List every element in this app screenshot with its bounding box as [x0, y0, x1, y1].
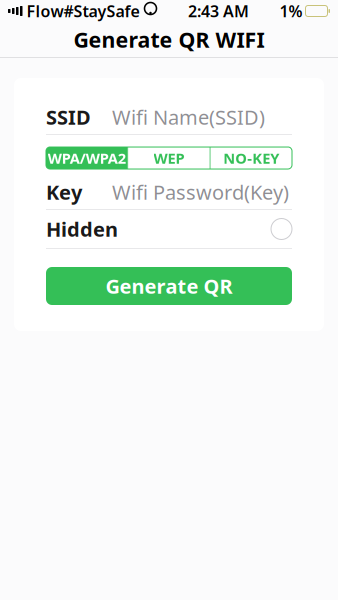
- staticText: NO-KEY: [223, 148, 279, 168]
- staticText: 2:43 AM: [188, 0, 249, 22]
- staticText: 1%: [279, 0, 302, 22]
- staticText: Generate QR: [105, 273, 232, 299]
- button[interactable]: Generate QR: [46, 267, 292, 305]
- button[interactable]: WPA/WPA2: [46, 147, 127, 169]
- staticText: Wifi Password(Key): [112, 179, 289, 205]
- staticText: WPA/WPA2: [48, 148, 126, 168]
- staticText: Wifi Name(SSID): [112, 104, 265, 130]
- staticText: Hidden: [46, 216, 118, 242]
- button[interactable]: Wifi Name(SSID): [112, 100, 292, 134]
- staticText: WEP: [153, 148, 184, 168]
- staticText: Key: [46, 179, 82, 205]
- staticText: SSID: [46, 104, 91, 130]
- button[interactable]: Wifi Password(Key): [112, 175, 292, 209]
- staticText: Generate QR WIFI: [73, 25, 264, 54]
- button[interactable]: Hidden network toggle: [271, 218, 292, 239]
- staticText: Flow#StaySafe: [26, 0, 139, 22]
- button[interactable]: NO-KEY: [211, 147, 292, 169]
- button[interactable]: WEP: [128, 147, 210, 169]
